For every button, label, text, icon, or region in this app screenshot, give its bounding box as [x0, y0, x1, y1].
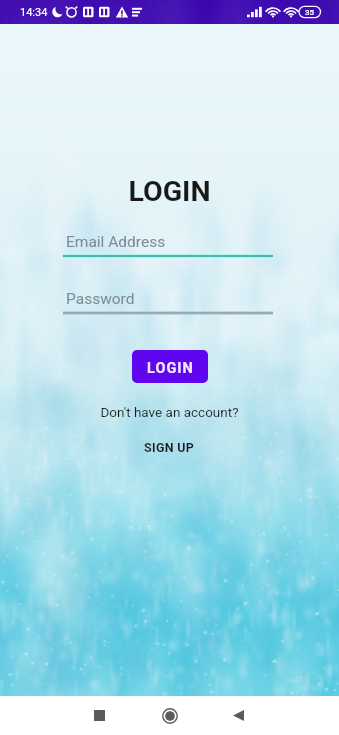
staticText: SIGN UP [144, 440, 195, 455]
button[interactable]: Email Address [63, 233, 273, 258]
button[interactable]: SIGN UP [130, 438, 209, 457]
staticText: Password [66, 290, 135, 308]
staticText: Don't have an account? [0, 404, 339, 420]
button[interactable]: Recent apps [79, 696, 119, 735]
button[interactable]: Password [63, 290, 273, 315]
staticText: LOGIN [0, 175, 339, 208]
staticText: LOGIN [147, 360, 194, 377]
staticText: Email Address [66, 233, 166, 251]
button[interactable]: Back [218, 696, 258, 735]
staticText: 14:34 [20, 6, 48, 19]
button[interactable]: LOGIN [132, 350, 208, 383]
button[interactable]: Home [150, 696, 190, 735]
staticText: 35 [305, 8, 315, 17]
